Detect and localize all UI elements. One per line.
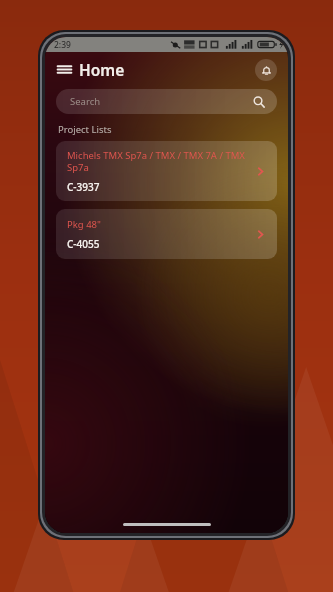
staticText: C-3937 <box>67 180 100 194</box>
button[interactable]: Notifications <box>255 59 277 81</box>
button[interactable]: Search <box>56 89 277 114</box>
staticText: Search <box>70 95 101 108</box>
other: Search <box>253 96 265 108</box>
staticText: C-4055 <box>67 237 100 251</box>
staticText: Michels TMX Sp7a / TMX / TMX 7A / TMX Sp… <box>67 149 245 174</box>
staticText: Home <box>79 59 125 80</box>
other: Open navigation menu <box>57 62 72 77</box>
staticText: Project Lists <box>58 123 112 136</box>
button[interactable]: Michels TMX Sp7a / TMX / TMX 7A / TMX Sp… <box>56 141 277 201</box>
staticText: 2:39 <box>54 39 71 51</box>
button[interactable]: Pkg 48" <box>56 209 277 259</box>
staticText: Pkg 48" <box>67 218 101 231</box>
button[interactable]: Open navigation menu <box>55 56 127 83</box>
